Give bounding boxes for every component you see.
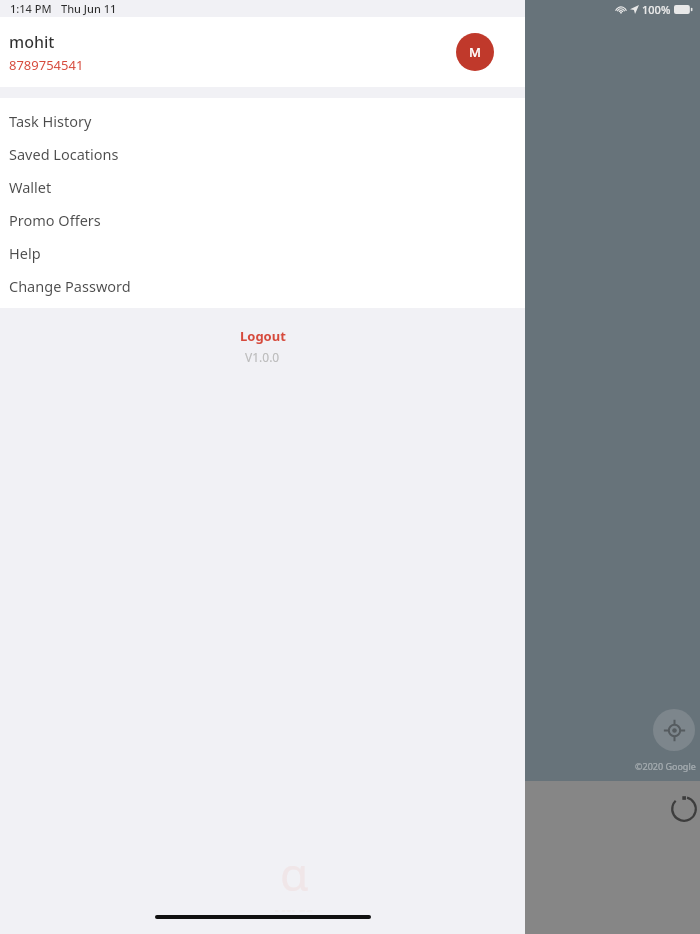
button[interactable]: Logout [0,325,525,347]
staticText: Logout [240,327,286,345]
staticText: Saved Locations [9,144,119,164]
staticText: mohit [9,31,55,53]
staticText: Promo Offers [9,210,101,230]
staticText: 8789754541 [9,56,84,74]
button[interactable]: Wallet [0,170,525,203]
button[interactable]: mohit [0,17,525,87]
button[interactable]: Task History [0,104,525,137]
staticText: Help [9,243,41,263]
staticText: 100% [642,2,671,17]
button[interactable]: Help [0,236,525,269]
staticText: 1:14 PM [10,1,52,16]
button[interactable]: Change Password [0,269,525,302]
staticText: Task History [9,111,92,131]
button[interactable]: My location [653,709,695,751]
staticText: α [280,842,309,905]
staticText: ©2020 Google [635,760,696,772]
staticText: Wallet [9,177,52,197]
staticText: Change Password [9,276,131,296]
button[interactable]: Promo Offers [0,203,525,236]
staticText: M [469,43,481,61]
staticText: Thu Jun 11 [61,1,117,16]
button[interactable]: Saved Locations [0,137,525,170]
staticText: V1.0.0 [245,349,280,365]
